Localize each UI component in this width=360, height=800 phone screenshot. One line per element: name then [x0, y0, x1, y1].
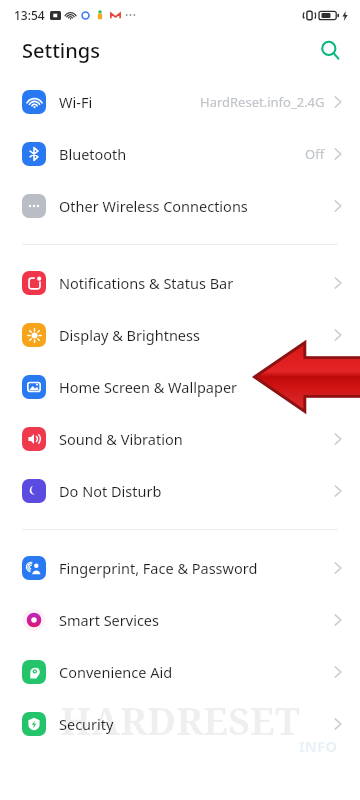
staticText: Do Not Disturb — [59, 481, 162, 501]
staticText: HardReset.info_2.4G — [200, 93, 325, 111]
button[interactable]: Bluetooth — [0, 128, 360, 180]
staticText: Home Screen & Wallpaper — [59, 377, 238, 397]
staticText: Settings — [22, 37, 100, 64]
staticText: Notifications & Status Bar — [59, 273, 234, 293]
button[interactable]: Home Screen & Wallpaper — [0, 361, 360, 413]
staticText: Display & Brightness — [59, 325, 200, 345]
button[interactable]: Wi-Fi — [0, 76, 360, 128]
button[interactable]: Security — [0, 698, 360, 750]
staticText: Fingerprint, Face & Password — [59, 558, 258, 578]
staticText: Security — [59, 714, 114, 734]
button[interactable]: Convenience Aid — [0, 646, 360, 698]
staticText: 13:54 — [14, 7, 45, 23]
staticText: Off — [305, 145, 325, 163]
staticText: Bluetooth — [59, 144, 127, 164]
button[interactable]: Smart Services — [0, 594, 360, 646]
button[interactable]: Search — [310, 30, 350, 70]
button[interactable]: Display & Brightness — [0, 309, 360, 361]
staticText: Convenience Aid — [59, 662, 173, 682]
button[interactable]: Notifications & Status Bar — [0, 257, 360, 309]
staticText: INFO — [299, 736, 338, 756]
staticText: Wi-Fi — [59, 92, 93, 112]
staticText: Smart Services — [59, 610, 159, 630]
button[interactable]: Other Wireless Connections — [0, 180, 360, 232]
staticText: HARDRESET — [0, 694, 360, 746]
button[interactable]: Fingerprint, Face & Password — [0, 542, 360, 594]
button[interactable]: Sound & Vibration — [0, 413, 360, 465]
staticText: Sound & Vibration — [59, 429, 183, 449]
button[interactable]: Do Not Disturb — [0, 465, 360, 517]
staticText: Other Wireless Connections — [59, 196, 248, 216]
